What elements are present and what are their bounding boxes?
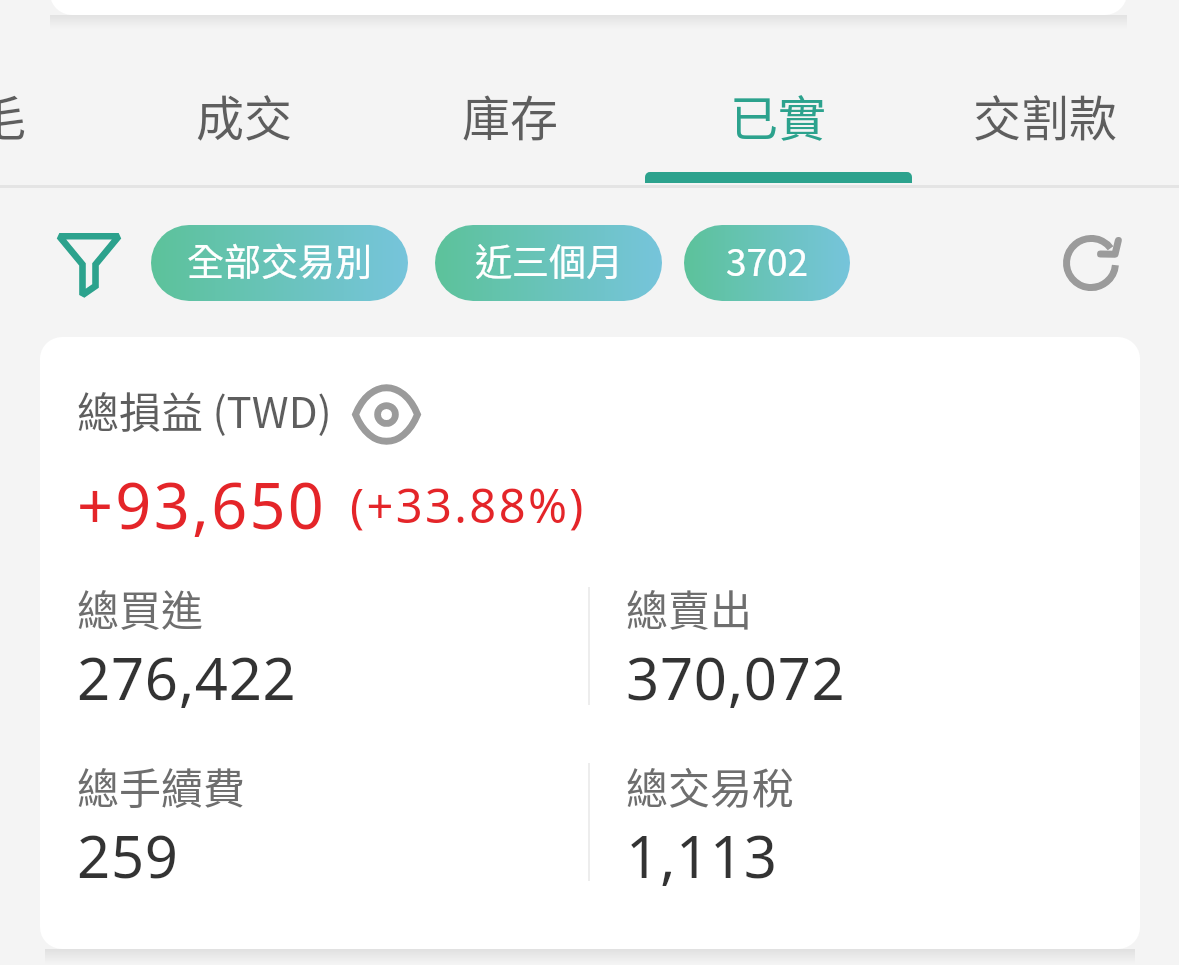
button[interactable]: 交割款 <box>925 55 1165 183</box>
button[interactable]: Toggle amount visibility <box>345 373 427 455</box>
staticText: 零毛 <box>0 80 27 150</box>
staticText: 交割款 <box>973 80 1118 150</box>
staticText: 259 <box>77 816 179 895</box>
button[interactable]: 3702 <box>684 225 850 301</box>
button[interactable]: 近三個月 <box>435 225 662 301</box>
button[interactable]: Filter <box>43 218 135 310</box>
staticText: 已實 <box>730 80 827 150</box>
staticText: 276,422 <box>77 638 297 717</box>
button[interactable]: 庫存 <box>390 55 630 183</box>
staticText: 3702 <box>726 233 809 287</box>
button[interactable]: 已實 <box>658 55 898 183</box>
staticText: 全部交易別 <box>187 233 372 287</box>
button[interactable]: Refresh <box>1046 218 1136 308</box>
staticText: 成交 <box>196 80 293 150</box>
button[interactable]: 零毛 <box>0 55 98 183</box>
button[interactable]: 全部交易別 <box>151 225 408 301</box>
staticText: 總買進 <box>77 577 204 638</box>
button[interactable]: 成交 <box>124 55 364 183</box>
staticText: 總手續費 <box>77 755 246 816</box>
staticText: (+33.88%) <box>350 473 586 537</box>
staticText: 庫存 <box>462 80 559 150</box>
staticText: 近三個月 <box>475 233 623 287</box>
staticText: +93,650 <box>77 462 327 548</box>
staticText: 總賣出 <box>626 577 753 638</box>
staticText: 總損益 (TWD) <box>77 379 332 440</box>
staticText: 總交易稅 <box>626 755 795 816</box>
staticText: 370,072 <box>626 638 846 717</box>
staticText: 1,113 <box>626 816 778 895</box>
